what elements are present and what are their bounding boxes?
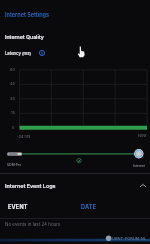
button[interactable]: Internet Settings (0, 0, 150, 22)
staticText: 0 (12, 125, 15, 130)
staticText: UBNT-FORUM.NL (112, 236, 147, 241)
staticText: Latency (ms) (5, 51, 32, 56)
button[interactable]: Internet Event Logs (0, 178, 150, 194)
staticText: Internet Quality (5, 34, 44, 40)
button[interactable]: Latency (ms) (5, 50, 45, 56)
button[interactable]: Collapse event logs (138, 181, 148, 191)
staticText: No events in last 24 hours (5, 222, 61, 227)
staticText: EVENT (8, 204, 28, 211)
staticText: Now (138, 133, 147, 138)
staticText: Internet Settings (5, 12, 50, 19)
button[interactable]: DATE (81, 204, 97, 211)
other: Info about latency (39, 50, 45, 56)
staticText: 60 (10, 67, 15, 72)
button[interactable]: EVENT (8, 204, 28, 211)
staticText: 45 (10, 81, 15, 86)
staticText: UDM-Pro (7, 163, 22, 167)
staticText: Internet Event Logs (5, 183, 56, 190)
staticText: -24 hrs (17, 134, 31, 139)
staticText: 30 (10, 96, 15, 101)
staticText: DATE (81, 204, 97, 211)
staticText: Internet (133, 164, 145, 168)
staticText: 15 (11, 110, 15, 115)
